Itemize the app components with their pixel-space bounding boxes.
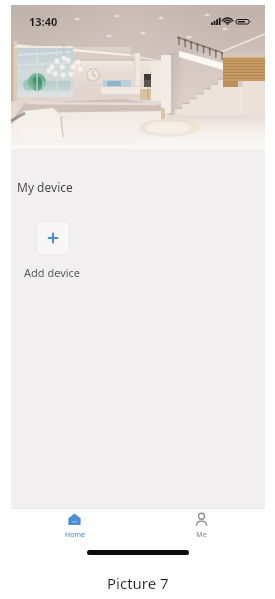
staticText: Picture 7 [107, 573, 169, 593]
button[interactable]: Add device [36, 221, 70, 255]
staticText: My device [17, 179, 73, 195]
button[interactable]: Me [138, 509, 265, 541]
button[interactable]: Home [11, 509, 138, 541]
staticText: 13:40 [29, 14, 58, 29]
staticText: Add device [24, 265, 81, 280]
staticText: Me [196, 530, 207, 540]
staticText: Home [65, 530, 85, 540]
